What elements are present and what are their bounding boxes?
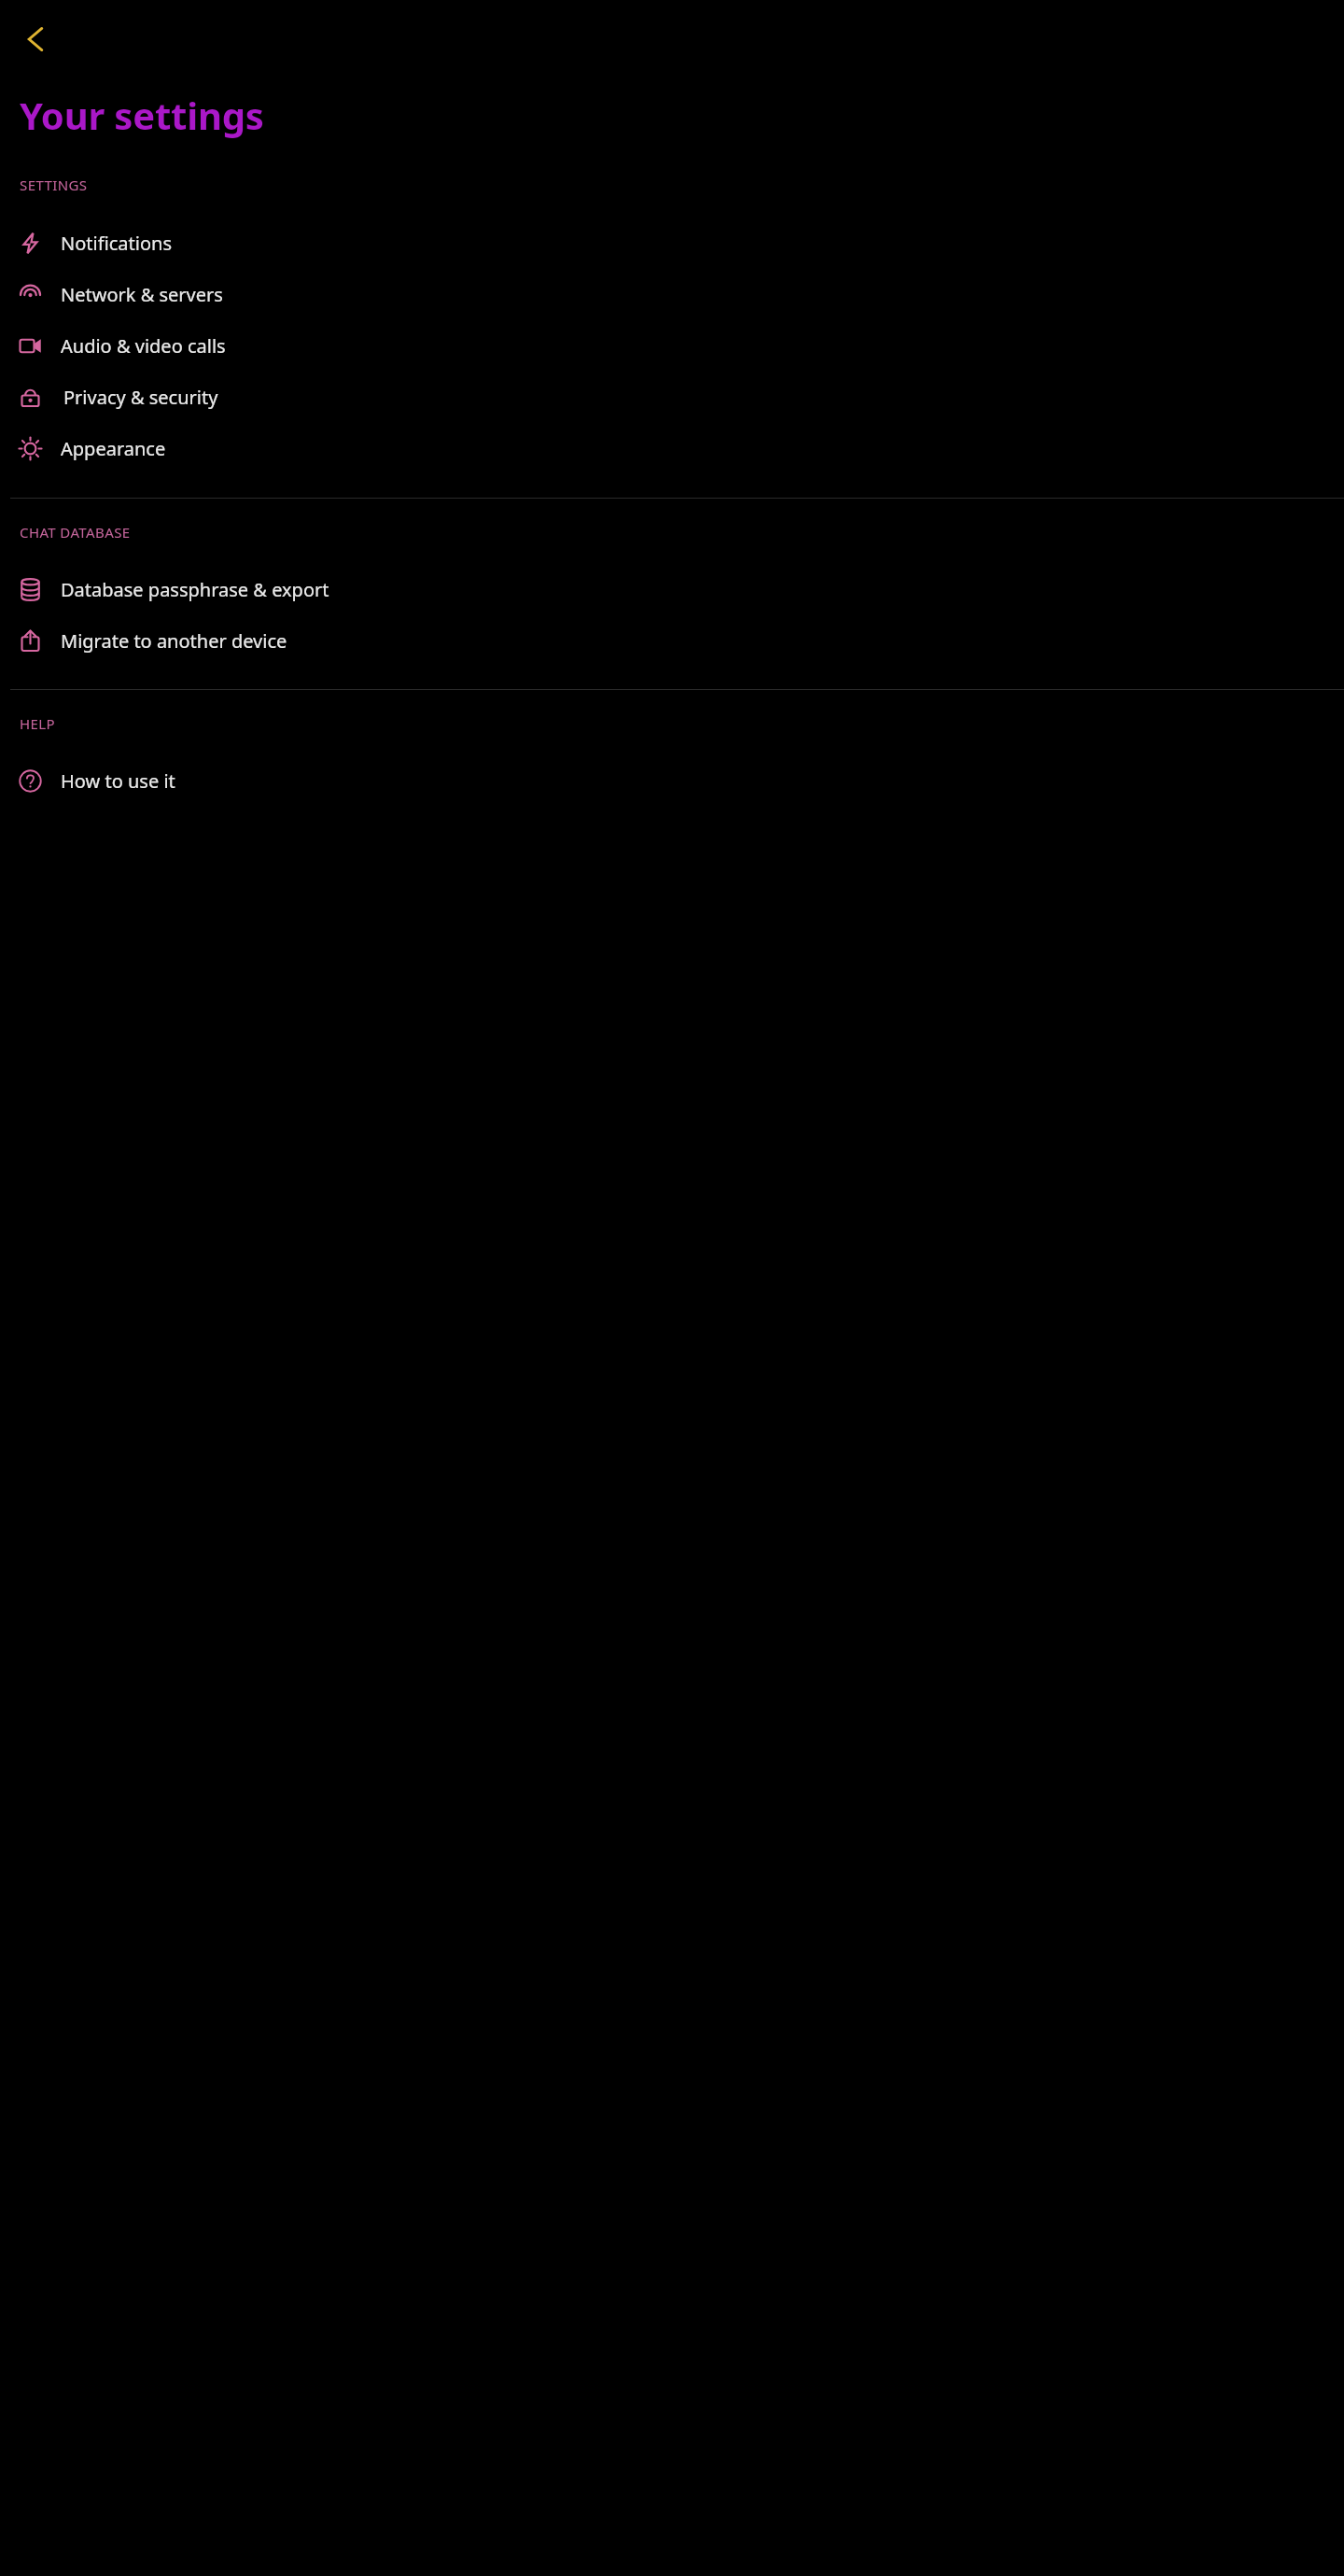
staticText: CHAT DATABASE [20,523,131,542]
button[interactable]: Audio & video calls [0,320,1344,372]
button[interactable]: Database passphrase & export [0,564,1344,615]
staticText: SETTINGS [20,176,88,194]
staticText: Privacy & security [63,385,218,410]
button[interactable]: Privacy & security [0,372,1344,423]
staticText: HELP [20,714,55,733]
button[interactable]: Back [9,13,62,65]
staticText: Notifications [61,231,172,256]
staticText: Audio & video calls [61,333,226,359]
staticText: Database passphrase & export [61,577,329,602]
button[interactable]: Notifications [0,218,1344,269]
staticText: Migrate to another device [61,628,287,654]
staticText: How to use it [61,768,175,794]
button[interactable]: Migrate to another device [0,615,1344,667]
staticText: Appearance [61,436,166,461]
button[interactable]: Appearance [0,423,1344,474]
staticText: Your settings [20,90,264,140]
button[interactable]: Network & servers [0,269,1344,320]
button[interactable]: How to use it [0,755,1344,807]
staticText: Network & servers [61,282,223,307]
